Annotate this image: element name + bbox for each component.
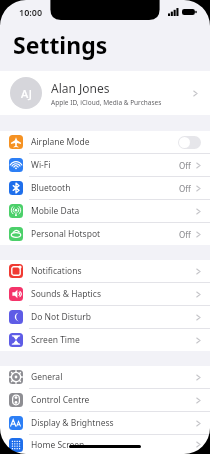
staticText: Screen Time bbox=[31, 334, 196, 346]
staticText: Sounds & Haptics bbox=[31, 288, 196, 300]
button[interactable]: Airplane Mode bbox=[0, 131, 210, 153]
staticText: Bluetooth bbox=[31, 182, 179, 194]
staticText: Control Centre bbox=[31, 394, 196, 406]
staticText: Apple ID, iCloud, Media & Purchases bbox=[51, 98, 162, 107]
staticText: Do Not Disturb bbox=[31, 311, 196, 323]
staticText: Off bbox=[179, 183, 191, 194]
button[interactable]: Bluetooth bbox=[0, 177, 210, 199]
staticText: Personal Hotspot bbox=[31, 228, 179, 240]
button[interactable]: Control Centre bbox=[0, 389, 210, 411]
staticText: Mobile Data bbox=[31, 205, 196, 217]
button[interactable]: Do Not Disturb bbox=[0, 306, 210, 328]
button[interactable]: Mobile Data bbox=[0, 200, 210, 222]
staticText: Home Screen bbox=[31, 439, 196, 451]
staticText: 10:00 bbox=[19, 6, 43, 18]
button[interactable]: Home Screen bbox=[0, 435, 210, 454]
button[interactable]: Airplane Mode toggle bbox=[178, 136, 201, 149]
staticText: General bbox=[31, 371, 196, 383]
staticText: Alan Jones bbox=[51, 80, 110, 96]
button[interactable]: Screen Time bbox=[0, 329, 210, 351]
staticText: Off bbox=[179, 229, 191, 240]
button[interactable]: Sounds & Haptics bbox=[0, 283, 210, 305]
button[interactable]: Notifications bbox=[0, 260, 210, 282]
staticText: Wi-Fi bbox=[31, 159, 179, 171]
staticText: Off bbox=[179, 160, 191, 171]
button[interactable]: General bbox=[0, 366, 210, 388]
button[interactable]: Wi-Fi bbox=[0, 154, 210, 176]
staticText: Airplane Mode bbox=[31, 136, 178, 148]
button[interactable]: AJ bbox=[0, 71, 210, 115]
staticText: Settings bbox=[13, 29, 108, 60]
button[interactable]: Display & Brightness bbox=[0, 412, 210, 434]
staticText: AJ bbox=[21, 86, 32, 101]
button[interactable]: Personal Hotspot bbox=[0, 223, 210, 245]
staticText: Notifications bbox=[31, 265, 196, 277]
staticText: Display & Brightness bbox=[31, 417, 196, 429]
